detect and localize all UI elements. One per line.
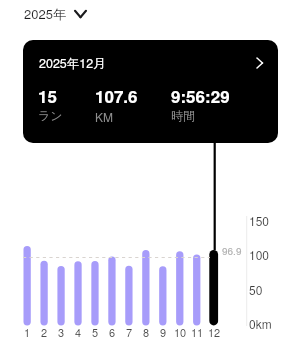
staticText: 100 <box>249 246 270 263</box>
staticText: 時間 <box>171 108 195 123</box>
staticText: ラン <box>38 108 63 123</box>
staticText: 9 <box>154 324 172 340</box>
staticText: 7 <box>120 324 138 340</box>
staticText: 2025年12月 <box>39 54 106 72</box>
staticText: 50 <box>249 281 263 298</box>
staticText: 11 <box>188 324 206 340</box>
staticText: 5 <box>86 324 104 340</box>
staticText: 96.9 <box>222 244 242 258</box>
staticText: 150 <box>249 212 270 229</box>
staticText: 0km <box>249 315 272 332</box>
staticText: 3 <box>52 324 70 340</box>
staticText: KM <box>95 108 114 125</box>
staticText: 12 <box>205 324 223 340</box>
staticText: 15 <box>38 84 57 108</box>
staticText: 107.6 <box>95 84 138 108</box>
staticText: 10 <box>171 324 189 340</box>
staticText: 9:56:29 <box>171 84 230 108</box>
staticText: 1 <box>18 324 36 340</box>
staticText: 8 <box>137 324 155 340</box>
button[interactable]: Open month details <box>245 50 271 76</box>
button[interactable]: 2025年12月 <box>23 40 278 143</box>
staticText: 2025年 <box>24 4 66 23</box>
staticText: 4 <box>69 324 87 340</box>
staticText: 2 <box>35 324 53 340</box>
staticText: 6 <box>103 324 121 340</box>
button[interactable]: 2025年 <box>24 4 87 23</box>
